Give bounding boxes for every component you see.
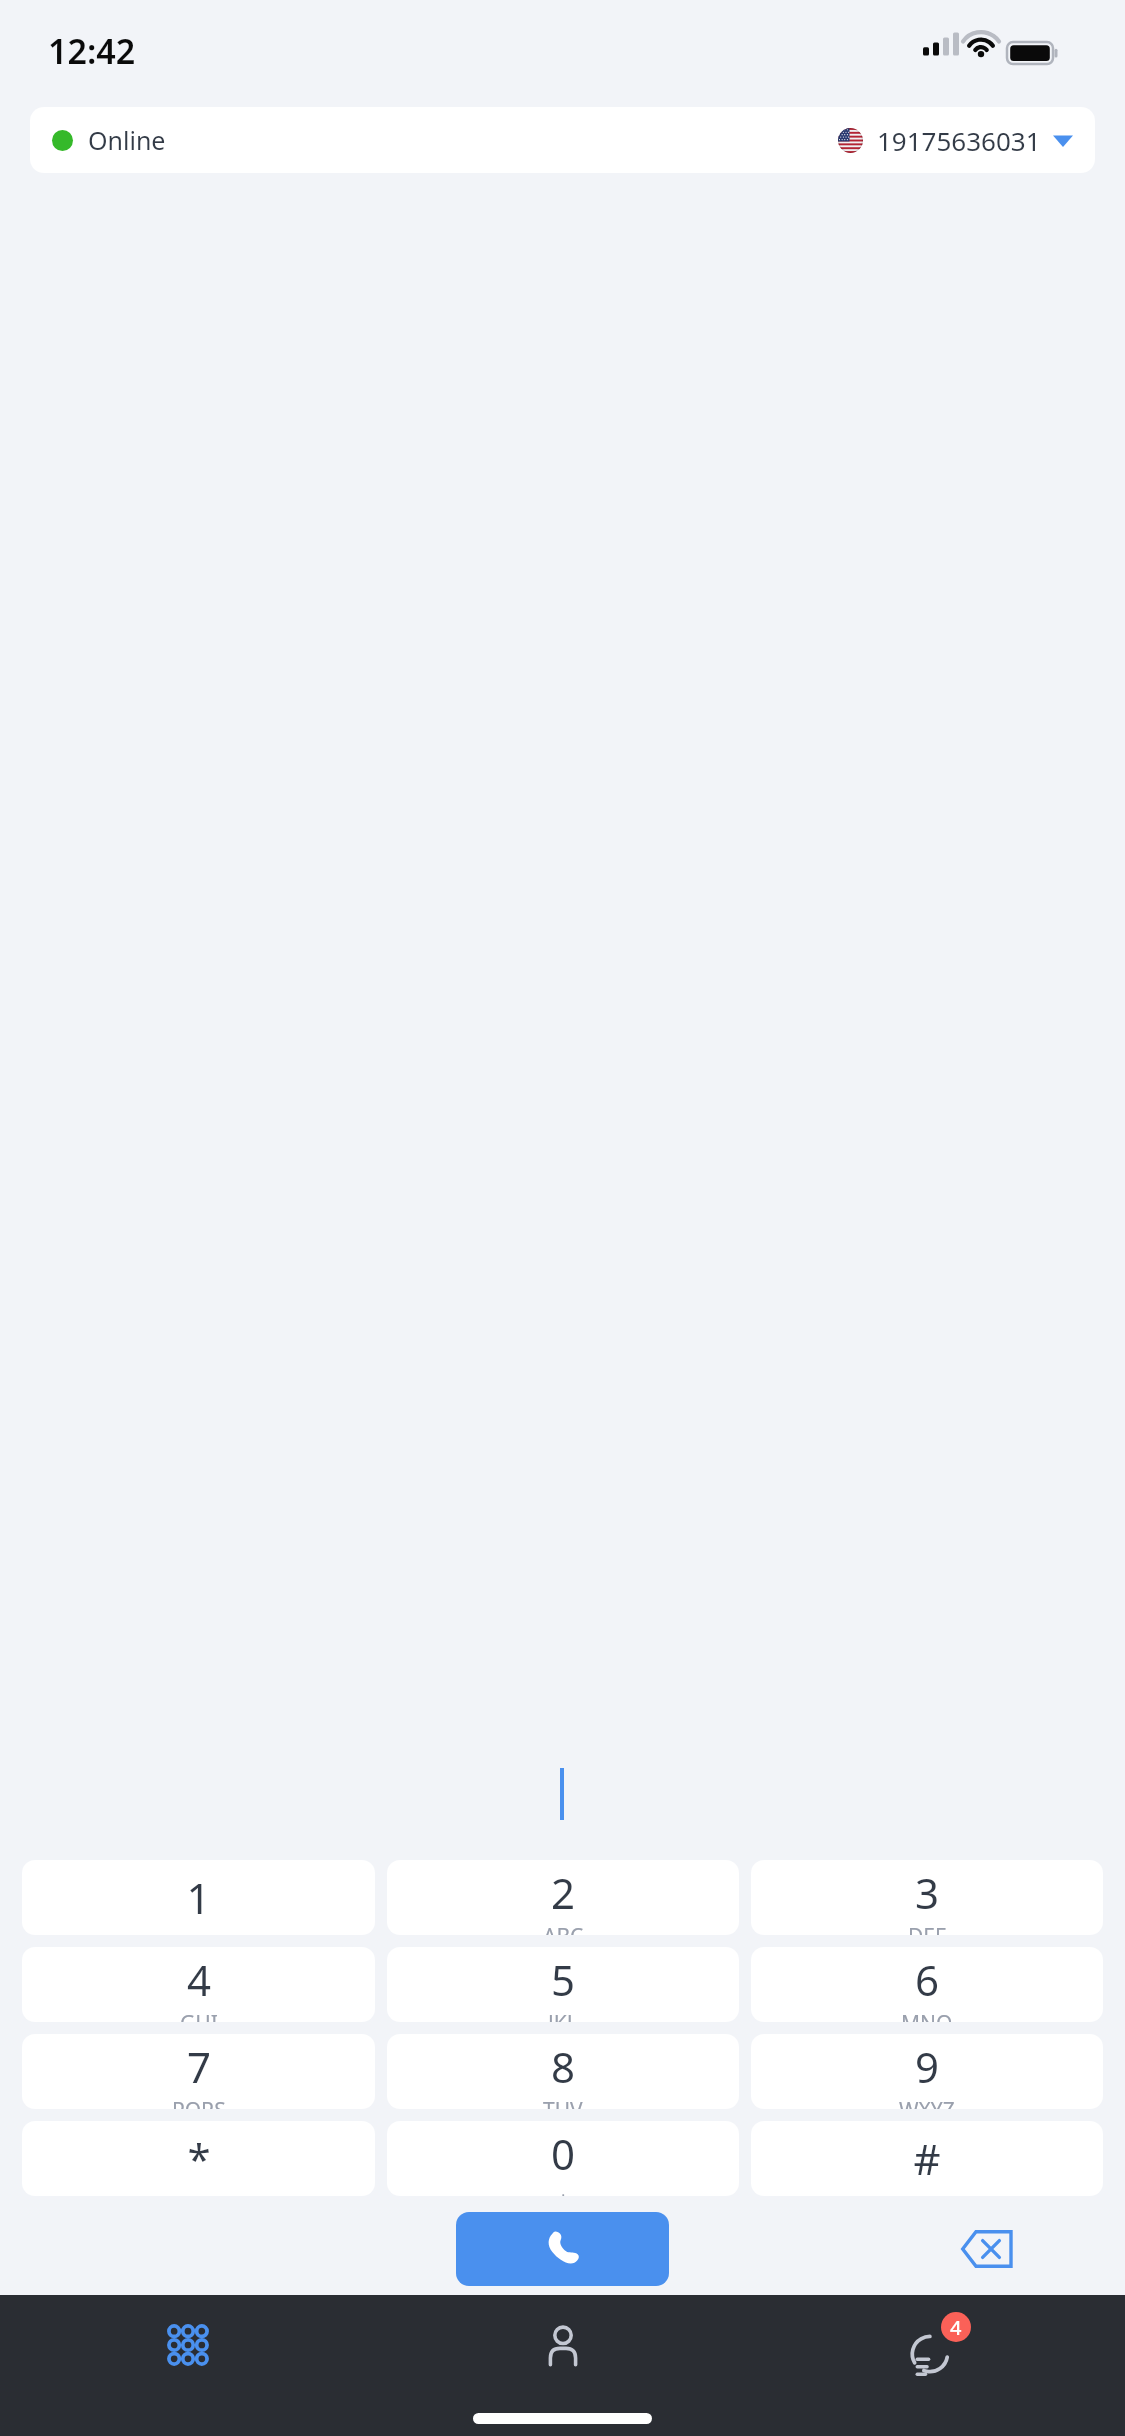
staticText: 6 (915, 1951, 940, 2008)
staticText: * (187, 2130, 211, 2187)
staticText: TUV (543, 2096, 583, 2109)
staticText: MNO (901, 2009, 953, 2022)
button[interactable]: 8 (387, 2034, 739, 2109)
staticText: 2 (551, 1864, 576, 1921)
button[interactable]: Call (456, 2212, 669, 2286)
button[interactable]: 4 (22, 1947, 375, 2022)
button[interactable]: 5 (387, 1947, 739, 2022)
staticText: 7 (187, 2038, 212, 2095)
button[interactable]: 3 (751, 1860, 1103, 1935)
staticText: Online (88, 123, 166, 157)
button[interactable]: 1 (22, 1860, 375, 1935)
button[interactable]: 7 (22, 2034, 375, 2109)
staticText: ABC (543, 1922, 584, 1935)
button[interactable]: # (751, 2121, 1103, 2196)
button[interactable]: 6 (751, 1947, 1103, 2022)
staticText: 9 (915, 2038, 940, 2095)
staticText: 4 (187, 1951, 212, 2008)
button[interactable]: Dialpad (0, 2295, 375, 2395)
button[interactable]: Online (30, 107, 1095, 173)
button[interactable]: 9 (751, 2034, 1103, 2109)
staticText: 4 (950, 2314, 962, 2341)
staticText: PQRS (172, 2096, 226, 2109)
button[interactable]: 2 (387, 1860, 739, 1935)
staticText: 5 (551, 1951, 576, 2008)
staticText: # (913, 2130, 941, 2187)
button[interactable]: * (22, 2121, 375, 2196)
button[interactable]: Call history, 4 new (750, 2295, 1125, 2395)
button[interactable]: Contacts (375, 2295, 750, 2395)
button[interactable]: Backspace (955, 2218, 1017, 2280)
staticText: 0 (551, 2125, 576, 2182)
button[interactable]: 0 (387, 2121, 739, 2196)
staticText: + (557, 2183, 570, 2196)
staticText: 12:42 (48, 28, 136, 74)
staticText: 19175636031 (877, 123, 1041, 158)
staticText: DEF (908, 1922, 946, 1935)
staticText: 1 (186, 1869, 211, 1926)
staticText: 8 (551, 2038, 576, 2095)
staticText: 3 (915, 1864, 940, 1921)
staticText: GHI (180, 2009, 218, 2022)
staticText: JKL (548, 2009, 578, 2022)
staticText: WXYZ (899, 2096, 955, 2109)
